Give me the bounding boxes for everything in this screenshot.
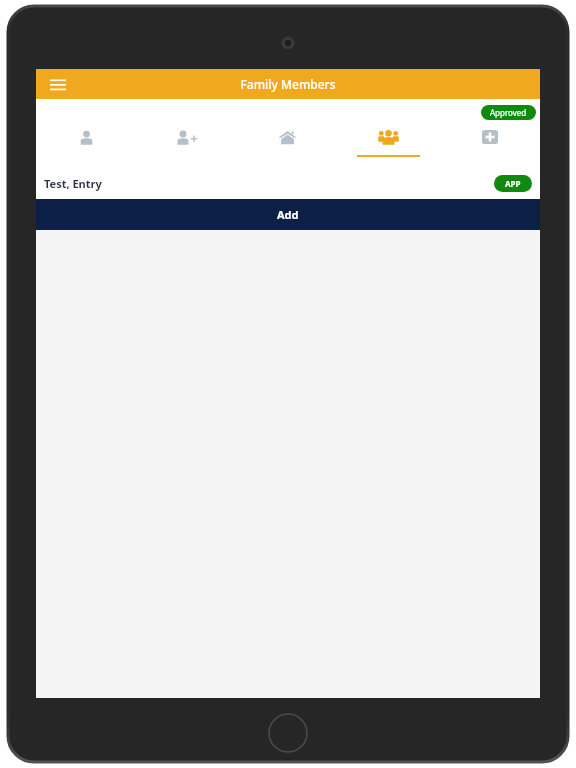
staticText: Test, Entry <box>44 176 102 191</box>
button[interactable]: Home <box>237 127 338 161</box>
button[interactable]: Profile <box>36 127 136 161</box>
button[interactable]: Open navigation menu <box>44 70 72 98</box>
button[interactable]: More <box>439 127 540 161</box>
button[interactable]: Add <box>36 199 540 230</box>
button[interactable]: Approved <box>481 105 536 120</box>
button[interactable]: Family members <box>338 127 439 161</box>
staticText: Add <box>277 207 299 222</box>
staticText: Family Members <box>240 76 336 92</box>
staticText: Approved <box>490 107 527 118</box>
button[interactable]: Add person <box>136 127 237 161</box>
staticText: APP <box>505 178 521 189</box>
button[interactable]: APP <box>494 175 532 192</box>
